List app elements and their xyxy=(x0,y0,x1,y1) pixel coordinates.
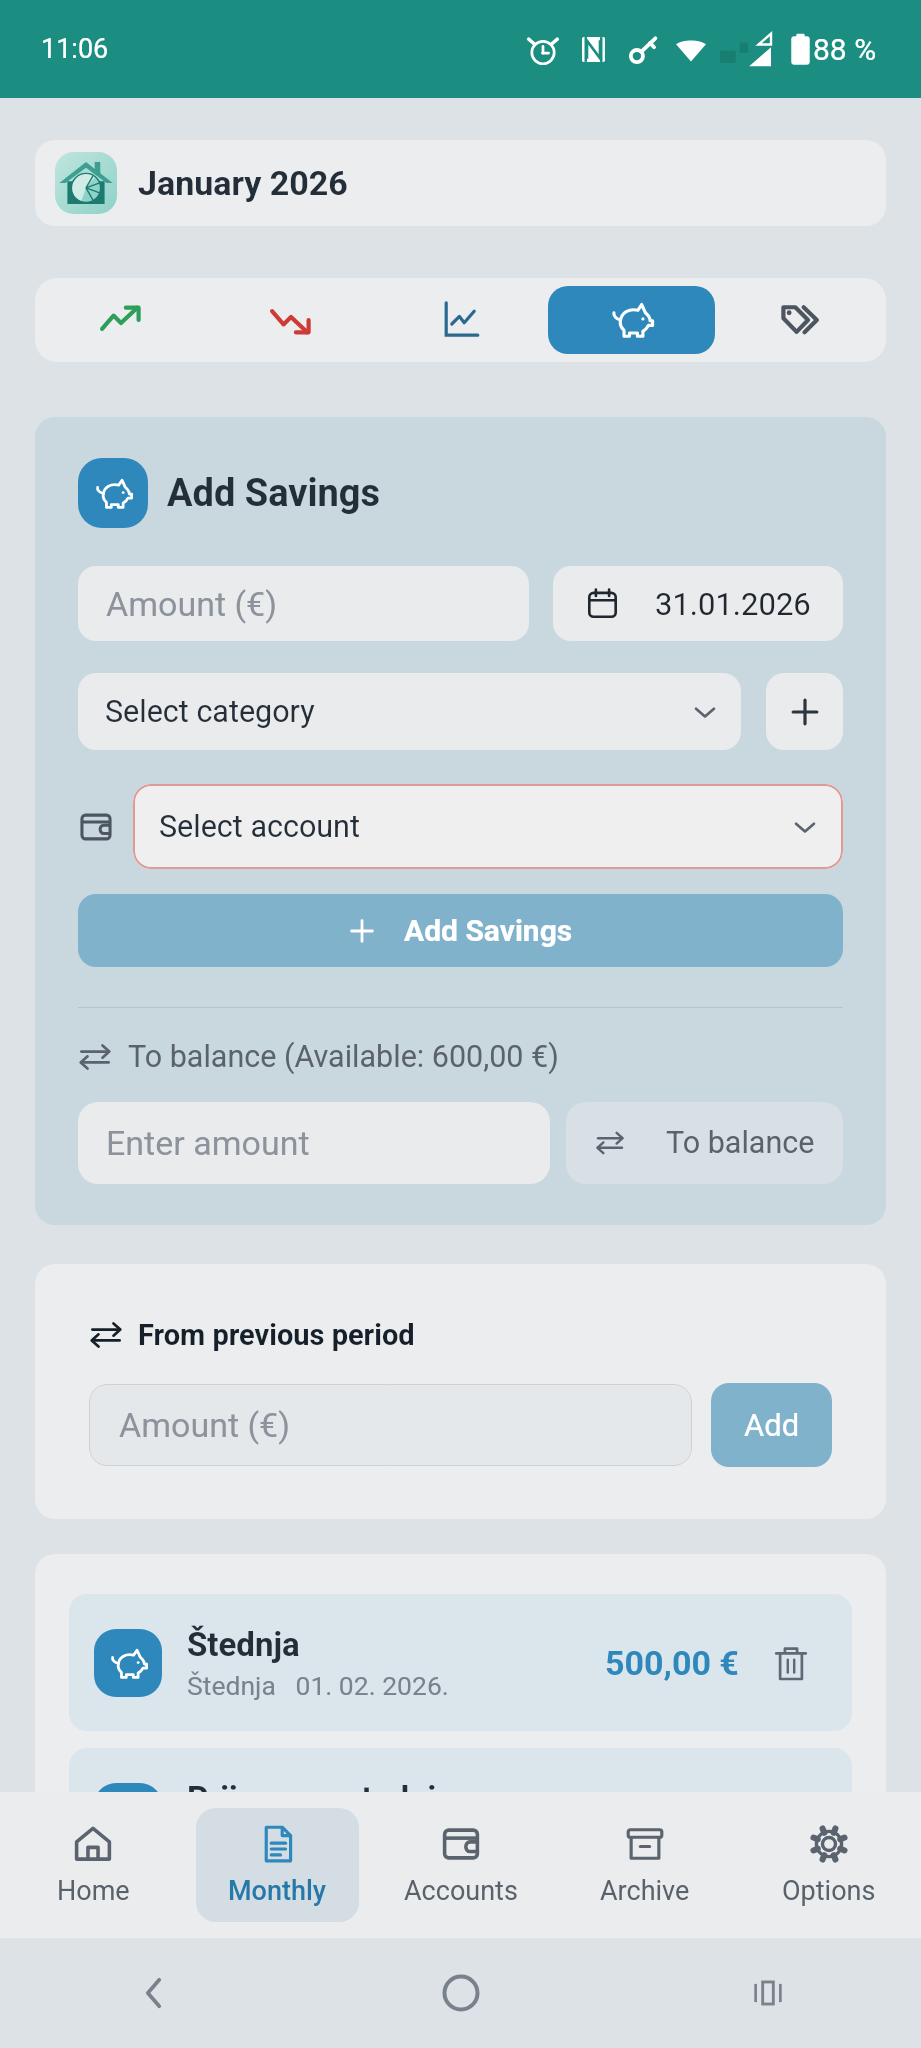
button[interactable]: Home xyxy=(307,1938,614,2048)
staticText: January 2026 xyxy=(138,163,348,203)
button[interactable]: Select account xyxy=(133,784,843,869)
staticText: Select account xyxy=(159,809,791,845)
staticText: To balance xyxy=(666,1125,815,1161)
staticText: Home xyxy=(57,1875,130,1907)
button[interactable]: Amount (€) xyxy=(78,566,529,641)
staticText: Štednja 01. 02. 2026. xyxy=(187,1670,449,1701)
staticText: From previous period xyxy=(138,1318,415,1352)
staticText: Amount (€) xyxy=(106,584,278,624)
button[interactable]: Prijenos u stednju xyxy=(69,1748,852,1792)
button[interactable]: Recents xyxy=(614,1938,921,2048)
staticText: Add Savings xyxy=(404,913,573,948)
staticText: 11:06 xyxy=(41,33,109,65)
staticText: To balance (Available: 600,00 €) xyxy=(128,1039,559,1075)
button[interactable]: Štednja xyxy=(69,1594,852,1731)
button[interactable]: Categories xyxy=(716,278,886,362)
button[interactable]: Expenses xyxy=(206,278,376,362)
staticText: Accounts xyxy=(404,1875,518,1907)
staticText: 500,00 € xyxy=(605,1643,739,1683)
button[interactable]: Select category xyxy=(78,673,741,750)
button[interactable]: Home xyxy=(23,1808,163,1922)
staticText: Štednja xyxy=(187,1625,300,1664)
button[interactable]: Options xyxy=(759,1808,899,1922)
button[interactable]: Statistics xyxy=(376,278,546,362)
staticText: Add Savings xyxy=(167,471,381,516)
button[interactable]: Add Savings xyxy=(78,894,843,967)
staticText: Archive xyxy=(600,1875,690,1907)
button[interactable]: 31.01.2026 xyxy=(553,566,843,641)
button[interactable]: Back xyxy=(0,1938,307,2048)
button[interactable]: Archive xyxy=(575,1808,715,1922)
button[interactable]: Monthly xyxy=(196,1808,359,1922)
button[interactable]: Amount (€) xyxy=(89,1384,692,1466)
staticText: Select category xyxy=(105,694,691,730)
button[interactable]: Enter amount xyxy=(78,1102,550,1184)
staticText: Options xyxy=(782,1875,876,1907)
staticText: 88 % xyxy=(813,32,877,67)
button[interactable]: Add xyxy=(711,1383,832,1467)
button[interactable]: Delete xyxy=(775,1643,807,1683)
staticText: Enter amount xyxy=(106,1123,310,1163)
staticText: Prijenos u stednju xyxy=(187,1779,455,1792)
staticText: Monthly xyxy=(228,1875,327,1907)
button[interactable]: Savings xyxy=(548,286,715,354)
button[interactable]: To balance xyxy=(566,1102,843,1184)
staticText: 31.01.2026 xyxy=(655,586,811,622)
button[interactable]: January 2026 xyxy=(35,140,886,226)
staticText: Amount (€) xyxy=(119,1405,291,1445)
staticText: Add xyxy=(744,1407,800,1443)
button[interactable]: Add category xyxy=(766,673,843,750)
button[interactable]: Income xyxy=(35,278,206,362)
button[interactable]: Accounts xyxy=(391,1808,531,1922)
